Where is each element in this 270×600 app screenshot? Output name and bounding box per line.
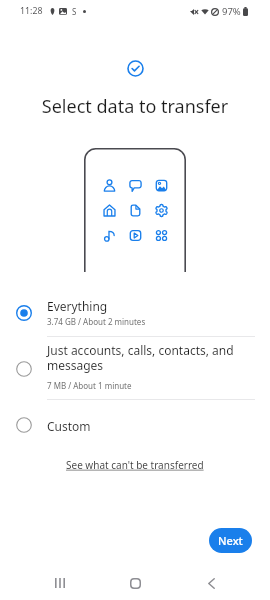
button[interactable]: Custom — [0, 400, 270, 451]
button[interactable]: See what can't be transferred — [66, 458, 204, 472]
staticText: S — [72, 6, 77, 17]
button[interactable]: Everything — [0, 289, 270, 336]
staticText: Just accounts, calls, contacts, and — [47, 342, 234, 358]
staticText: 11:28 — [20, 5, 43, 17]
button[interactable]: Recent apps — [39, 566, 81, 600]
staticText: messages — [47, 357, 104, 373]
staticText: 3.74 GB / About 2 minutes — [47, 316, 146, 327]
button[interactable]: Just accounts, calls, contacts, and — [0, 337, 270, 399]
staticText: Everything — [47, 298, 108, 314]
staticText: 97% — [222, 5, 241, 18]
staticText: 7 MB / About 1 minute — [47, 380, 132, 391]
staticText: Next — [218, 533, 243, 548]
button[interactable]: Home — [114, 566, 156, 600]
button[interactable]: Back — [190, 566, 232, 600]
staticText: Select data to transfer — [0, 94, 270, 119]
button[interactable]: Next — [209, 528, 252, 553]
staticText: Custom — [47, 418, 91, 434]
